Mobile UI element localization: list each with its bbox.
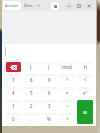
button[interactable]: ( <box>23 62 39 72</box>
button[interactable]: Backspace <box>6 62 21 72</box>
staticText: 3 <box>48 103 51 109</box>
staticText: ÷ <box>66 77 69 83</box>
staticText: x² <box>83 90 87 96</box>
button[interactable]: π <box>77 62 93 72</box>
button[interactable]: 9 <box>41 74 57 85</box>
button[interactable]: 2 <box>23 100 39 111</box>
button[interactable]: 0 <box>6 113 21 124</box>
button[interactable]: √ <box>77 74 93 85</box>
button[interactable]: Minimize <box>65 2 73 10</box>
button[interactable]: % <box>41 113 57 124</box>
button[interactable]: ÷ <box>59 74 75 85</box>
button[interactable]: 8 <box>23 74 39 85</box>
staticText: 6 <box>48 90 51 96</box>
button[interactable]: 3 <box>41 100 57 111</box>
staticText: 1 <box>12 103 15 109</box>
button[interactable]: + <box>59 113 75 124</box>
button[interactable]: New tab <box>51 2 59 10</box>
button[interactable]: x² <box>77 87 93 98</box>
staticText: × <box>66 90 69 96</box>
button[interactable]: 5 <box>23 87 39 98</box>
staticText: + <box>66 116 69 122</box>
staticText: 2 <box>30 103 33 109</box>
button[interactable]: Close <box>85 2 93 10</box>
staticText: Élém... <box>24 3 36 8</box>
button[interactable]: Élém... <box>24 3 40 8</box>
staticText: 4 <box>12 90 15 96</box>
button[interactable]: 6 <box>41 87 57 98</box>
staticText: 5 <box>30 90 33 96</box>
button[interactable]: 7 <box>6 74 21 85</box>
staticText: 0 <box>12 116 15 122</box>
staticText: 9 <box>48 77 51 83</box>
staticText: % <box>47 116 51 122</box>
button[interactable]: 4 <box>6 87 21 98</box>
staticText: . <box>30 116 32 122</box>
button[interactable]: . <box>23 113 39 124</box>
button[interactable]: mod <box>59 62 75 72</box>
button[interactable]: − <box>59 100 75 111</box>
button[interactable]: × <box>59 87 75 98</box>
staticText: mod <box>62 64 72 70</box>
staticText: 8 <box>30 77 33 83</box>
button[interactable]: Annuler <box>3 1 21 10</box>
staticText: √ <box>84 77 87 82</box>
staticText: − <box>66 103 69 109</box>
button[interactable]: Maximize <box>75 2 83 10</box>
staticText: π <box>84 64 87 70</box>
staticText: ) <box>48 64 50 70</box>
staticText: 7 <box>12 77 15 83</box>
button[interactable]: ) <box>41 62 57 72</box>
button[interactable]: 1 <box>6 100 21 111</box>
staticText: Annuler <box>5 3 19 8</box>
staticText: ( <box>30 64 32 70</box>
button[interactable]: Equals <box>77 100 93 124</box>
